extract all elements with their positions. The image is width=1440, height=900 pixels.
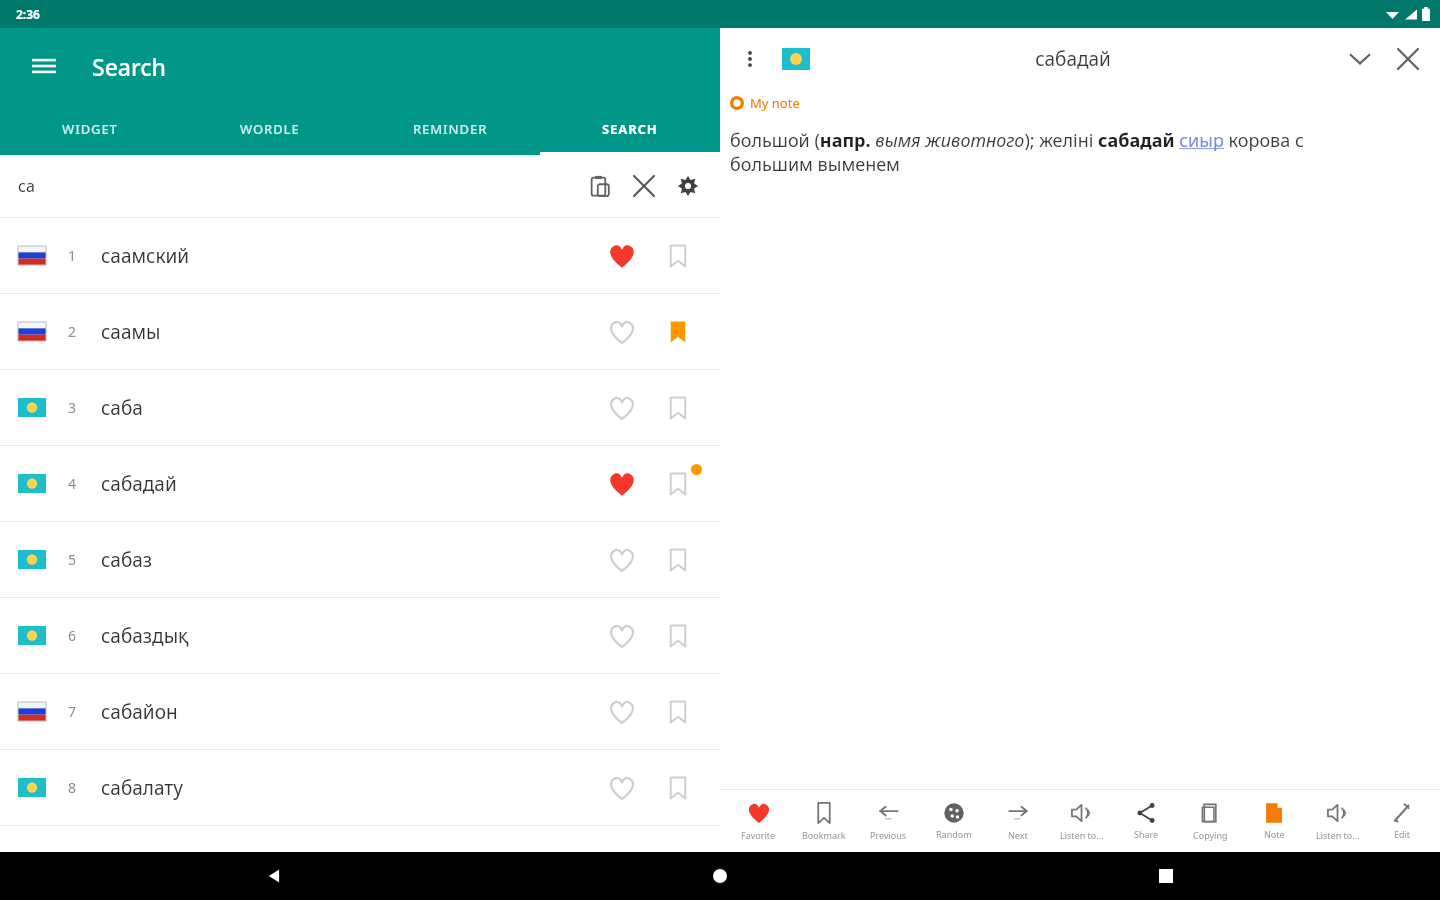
button[interactable]: Bookmark [791, 790, 856, 852]
button[interactable]: WORDLE [180, 103, 360, 155]
button[interactable]: Bookmark [650, 380, 706, 436]
button[interactable]: Bookmark [650, 684, 706, 740]
staticText: Random [936, 828, 972, 840]
button[interactable]: Previous [856, 790, 921, 852]
button[interactable]: Bookmark [650, 760, 706, 816]
staticText: 1 [68, 246, 77, 265]
staticText: сабаз [101, 547, 594, 573]
button[interactable]: My note [730, 94, 1440, 112]
button[interactable]: More options [728, 37, 772, 81]
button[interactable]: Edit [1370, 790, 1434, 852]
button[interactable]: 1 [0, 218, 720, 293]
staticText: большой (напр. вымя животного); желіні с… [730, 128, 1364, 176]
button[interactable]: Clear search [622, 164, 666, 208]
staticText: саба [101, 395, 594, 421]
staticText: My note [750, 94, 800, 112]
button[interactable]: Random [921, 790, 986, 852]
staticText: WORDLE [240, 120, 300, 138]
button[interactable]: Add favorite [594, 532, 650, 588]
staticText: REMINDER [413, 120, 488, 138]
staticText: 3 [68, 398, 77, 417]
button[interactable]: Paste from clipboard [578, 164, 622, 208]
staticText: 7 [68, 702, 77, 721]
button[interactable]: 7 [0, 674, 720, 749]
button[interactable]: Remove favorite [594, 228, 650, 284]
button[interactable]: Add favorite [594, 760, 650, 816]
button[interactable]: Search settings [666, 164, 710, 208]
staticText: Previous [870, 829, 907, 841]
button[interactable]: 3 [0, 370, 720, 445]
staticText: саамский [101, 243, 594, 269]
staticText: 4 [68, 474, 77, 493]
button[interactable]: WIDGET [0, 103, 180, 155]
button[interactable]: Bookmark [650, 304, 706, 360]
staticText: сабалату [101, 775, 594, 801]
staticText: Listen to... [1316, 829, 1360, 841]
button[interactable]: 5 [0, 522, 720, 597]
button[interactable]: Add favorite [594, 684, 650, 740]
staticText: 2 [68, 322, 77, 341]
button[interactable]: Add favorite [594, 608, 650, 664]
staticText: Favorite [741, 829, 776, 841]
button[interactable]: Add favorite [594, 380, 650, 436]
staticText: саамы [101, 319, 594, 345]
button[interactable]: 4 [0, 446, 720, 521]
button[interactable]: Next [986, 790, 1050, 852]
button[interactable]: SEARCH [540, 103, 720, 155]
button[interactable]: Remove favorite [594, 456, 650, 512]
staticText: Next [1008, 829, 1028, 841]
button[interactable]: Back [252, 854, 296, 898]
staticText: Bookmark [802, 829, 846, 841]
staticText: сабайон [101, 699, 594, 725]
staticText: SEARCH [602, 120, 658, 138]
staticText: 6 [68, 626, 77, 645]
staticText: 2:36 [16, 6, 40, 22]
button[interactable]: Bookmark [650, 456, 706, 512]
button[interactable]: Home [698, 854, 742, 898]
button[interactable]: Bookmark [650, 608, 706, 664]
button[interactable]: Bookmark [650, 228, 706, 284]
staticText: 5 [68, 550, 77, 569]
staticText: са [18, 175, 578, 197]
staticText: 8 [68, 778, 77, 797]
button[interactable]: 6 [0, 598, 720, 673]
button[interactable]: Collapse [1336, 35, 1384, 83]
staticText: Listen to... [1060, 829, 1104, 841]
staticText: сабаздық [101, 623, 594, 649]
button[interactable]: Bookmark [650, 532, 706, 588]
staticText: сабадай [101, 471, 594, 497]
staticText: Edit [1394, 828, 1411, 840]
button[interactable]: 8 [0, 750, 720, 825]
button[interactable]: Listen to... [1050, 790, 1114, 852]
staticText: сабадай [810, 46, 1336, 72]
staticText: Share [1134, 828, 1159, 840]
button[interactable]: Share [1114, 790, 1178, 852]
staticText: Note [1264, 828, 1285, 840]
staticText: Copying [1193, 829, 1228, 841]
button[interactable]: Favorite [726, 790, 791, 852]
button[interactable]: Copying [1178, 790, 1242, 852]
staticText: Search [92, 51, 166, 82]
button[interactable]: 2 [0, 294, 720, 369]
button[interactable]: REMINDER [360, 103, 540, 155]
button[interactable]: Open navigation menu [22, 44, 66, 88]
button[interactable]: Add favorite [594, 304, 650, 360]
button[interactable]: Note [1242, 790, 1306, 852]
staticText: WIDGET [62, 120, 118, 138]
button[interactable]: Recents [1144, 854, 1188, 898]
button[interactable]: Close [1384, 35, 1432, 83]
button[interactable]: Listen to... [1306, 790, 1370, 852]
